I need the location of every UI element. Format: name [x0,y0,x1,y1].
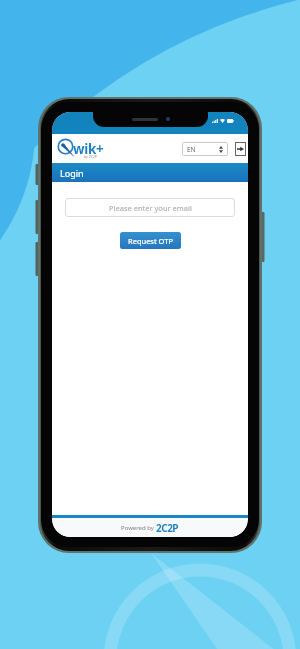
staticText: 2C2P [156,521,179,535]
staticText: wik+ [73,140,104,158]
staticText: Powered by [121,524,156,532]
button[interactable]: EN [182,142,228,156]
staticText: Request OTP [128,236,173,246]
staticText: Login [60,167,84,179]
staticText: EN [187,145,196,154]
button[interactable]: Please enter your email [65,198,235,217]
button[interactable]: Logout [235,142,246,156]
staticText: by 2C2P [84,154,98,159]
staticText: Please enter your email [109,203,192,213]
button[interactable]: Request OTP [120,232,181,249]
